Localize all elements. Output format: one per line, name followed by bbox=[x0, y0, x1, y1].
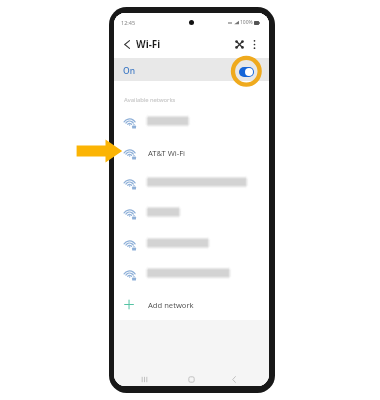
button[interactable] bbox=[114, 228, 269, 259]
button[interactable]: Add network bbox=[114, 289, 269, 320]
staticText: Add network bbox=[148, 300, 194, 310]
staticText: 12:45 bbox=[121, 19, 136, 26]
button[interactable]: Wi-Fi Direct bbox=[231, 36, 247, 52]
button[interactable] bbox=[114, 106, 269, 137]
button[interactable]: Home bbox=[182, 370, 201, 386]
staticText: Wi-Fi bbox=[136, 37, 161, 51]
staticText: On bbox=[123, 65, 135, 77]
button[interactable]: Back bbox=[224, 370, 243, 386]
button[interactable] bbox=[114, 167, 269, 198]
button[interactable]: Recent apps bbox=[135, 370, 154, 386]
button[interactable]: On bbox=[114, 58, 269, 81]
staticText: AT&T Wi-Fi bbox=[148, 148, 186, 158]
staticText: 100% bbox=[240, 19, 253, 26]
staticText: Available networks bbox=[124, 96, 176, 104]
button[interactable]: AT&T Wi-Fi bbox=[114, 137, 269, 168]
button[interactable]: More options bbox=[247, 37, 261, 51]
button[interactable]: Navigate up bbox=[118, 35, 136, 53]
button[interactable] bbox=[114, 258, 269, 289]
button[interactable] bbox=[114, 197, 269, 228]
